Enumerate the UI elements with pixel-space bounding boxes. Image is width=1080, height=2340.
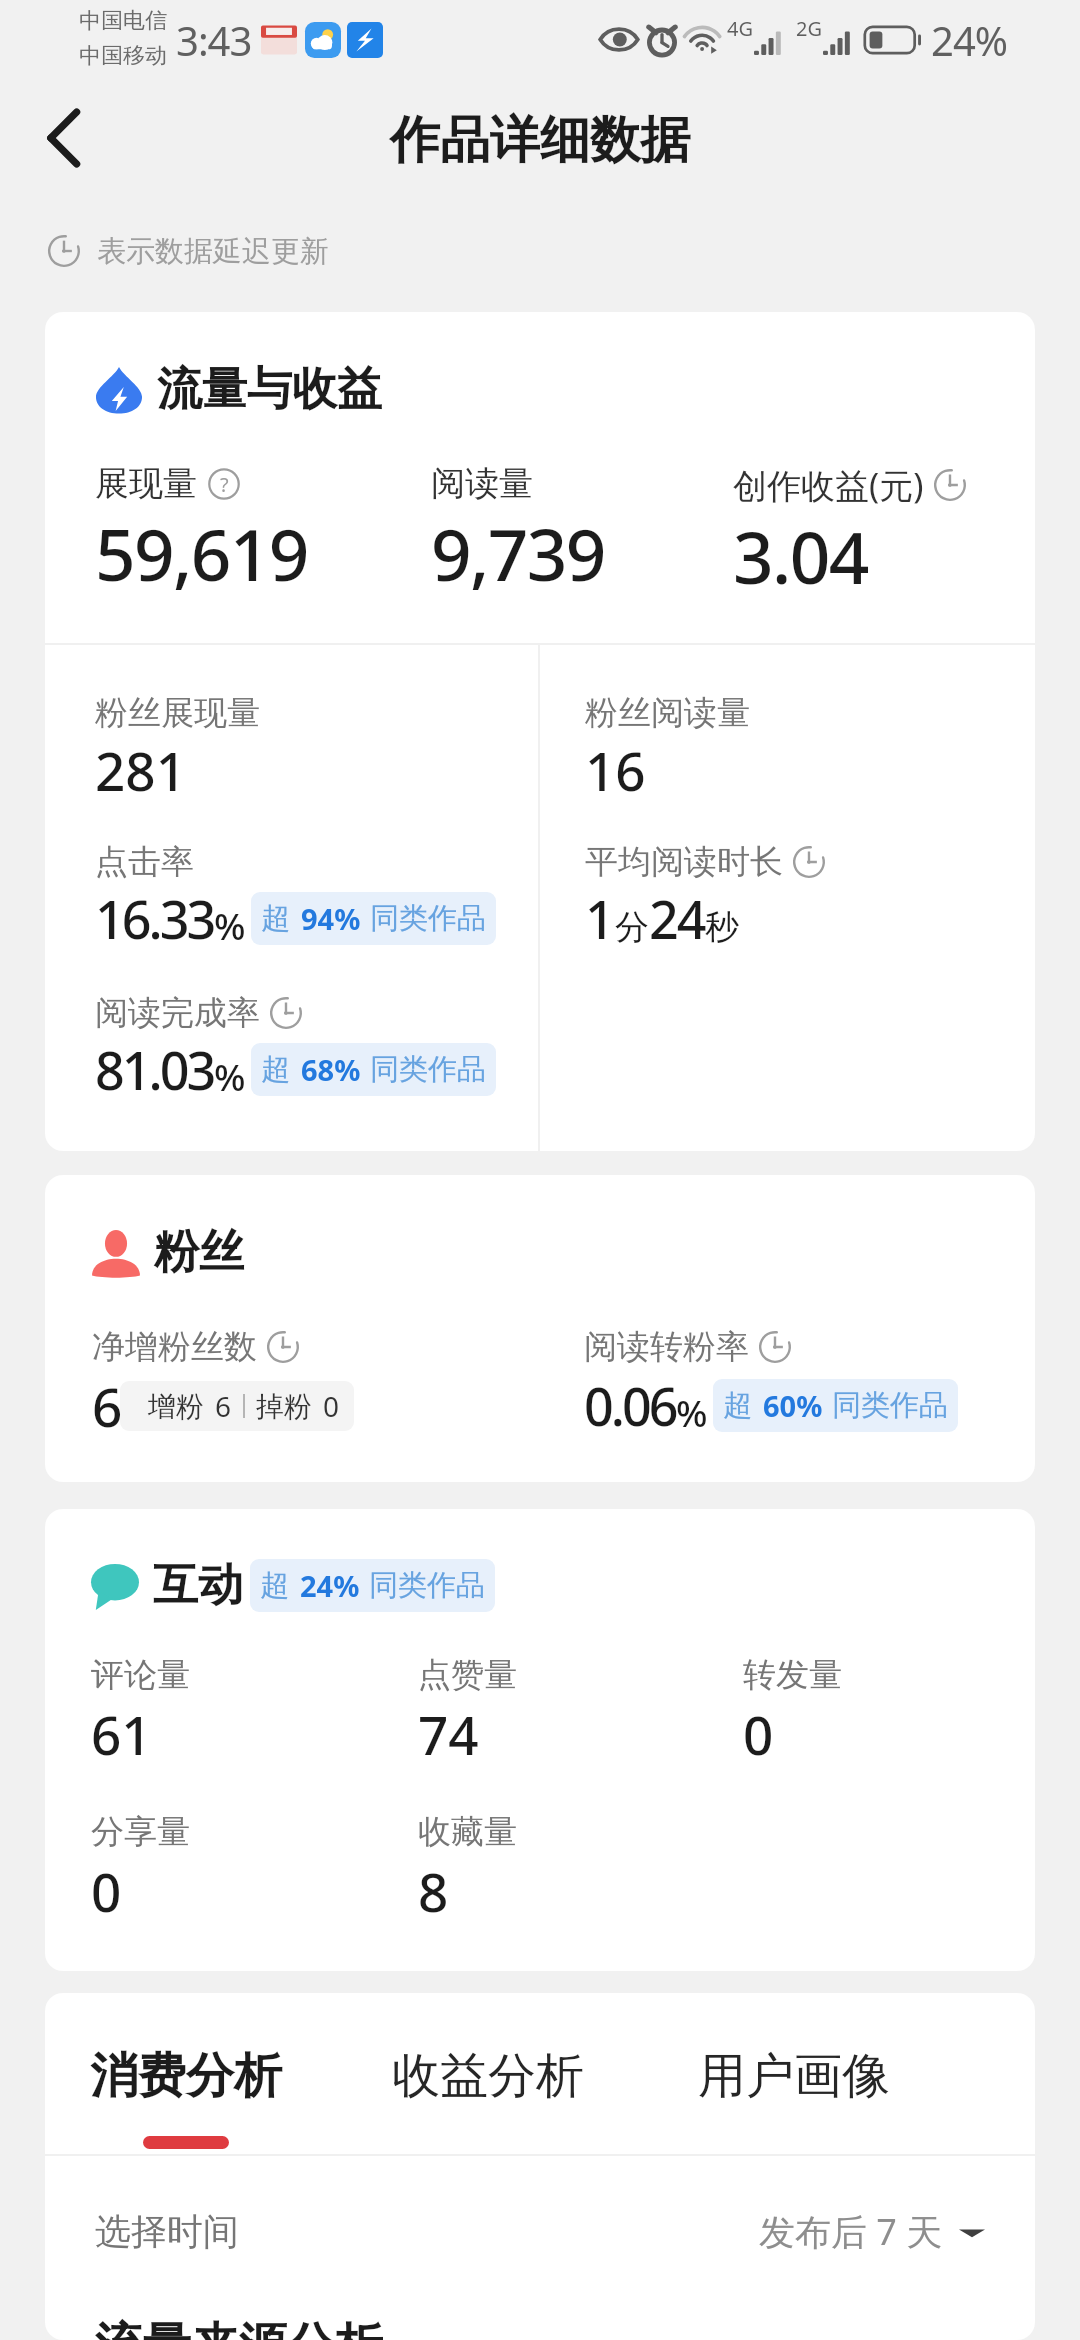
staticText: 24 [649, 883, 705, 954]
staticText: 同类作品 [832, 1387, 948, 1424]
staticText: 同类作品 [370, 1051, 486, 1088]
staticText: 16.33 [95, 883, 214, 954]
staticText: 8 [418, 1855, 449, 1927]
staticText: 流量来源分析 [95, 2316, 383, 2340]
staticText: 0 [91, 1855, 122, 1927]
staticText: 超 [261, 900, 290, 937]
staticText: 94% [301, 899, 361, 938]
staticText: 0 [323, 1387, 340, 1425]
button[interactable]: 用户画像 [693, 2046, 895, 2106]
staticText: 阅读转粉率 [584, 1326, 749, 1368]
staticText: 收益分析 [392, 2046, 584, 2106]
staticText: 增粉 [148, 1389, 204, 1424]
button[interactable]: Back [27, 98, 99, 178]
staticText: 74 [418, 1698, 479, 1770]
staticText: % [676, 1387, 708, 1437]
staticText: 展现量 [95, 462, 197, 505]
staticText: 3.04 [733, 508, 868, 605]
staticText: 60% [763, 1386, 823, 1425]
staticText: 59,619 [95, 505, 308, 602]
button[interactable]: 消费分析 [85, 2046, 287, 2149]
staticText: 6 [215, 1387, 232, 1425]
staticText: 2G [796, 15, 822, 42]
staticText: 掉粉 [256, 1389, 312, 1424]
staticText: 阅读量 [431, 462, 533, 505]
staticText: 粉丝阅读量 [585, 692, 750, 734]
staticText: 超 [260, 1567, 289, 1604]
staticText: 创作收益(元) [733, 462, 924, 508]
staticText: 秒 [705, 906, 739, 949]
staticText: 净增粉丝数 [92, 1326, 257, 1368]
staticText: 3:43 [176, 13, 252, 67]
staticText: 阅读完成率 [95, 992, 260, 1034]
staticText: 流量与收益 [157, 361, 382, 418]
staticText: 点击率 [95, 841, 194, 883]
staticText: 同类作品 [370, 900, 486, 937]
staticText: 互动 [153, 1557, 243, 1614]
staticText: 收藏量 [418, 1811, 517, 1853]
staticText: 24% [300, 1566, 360, 1605]
staticText: 4G [727, 15, 753, 42]
staticText: 超 [723, 1387, 752, 1424]
staticText: ? [220, 471, 229, 498]
staticText: 24% [931, 13, 1007, 67]
button[interactable]: Help: what is impressions [208, 468, 240, 500]
staticText: % [214, 1051, 246, 1101]
staticText: 表示数据延迟更新 [97, 233, 329, 270]
staticText: 68% [301, 1050, 361, 1089]
staticText: 同类作品 [369, 1567, 485, 1604]
staticText: 81.03 [95, 1034, 214, 1105]
staticText: % [214, 900, 246, 950]
staticText: 超 [261, 1051, 290, 1088]
staticText: 分享量 [91, 1811, 190, 1853]
staticText: 评论量 [91, 1654, 190, 1696]
staticText: 6 [92, 1370, 123, 1442]
staticText: 中国电信 [79, 7, 167, 35]
staticText: 1 [585, 883, 615, 954]
staticText: 点赞量 [418, 1654, 517, 1696]
staticText: 作品详细数据 [390, 109, 690, 172]
staticText: 粉丝展现量 [95, 692, 260, 734]
staticText: 9,739 [431, 505, 605, 602]
staticText: 发布后 7 天 [759, 2207, 943, 2256]
staticText: 0.06 [584, 1370, 676, 1441]
staticText: 转发量 [743, 1654, 842, 1696]
staticText: 16 [585, 734, 646, 806]
staticText: 281 [95, 734, 186, 806]
staticText: 分 [615, 906, 649, 949]
staticText: 平均阅读时长 [585, 841, 783, 883]
staticText: 用户画像 [698, 2046, 890, 2106]
staticText: 粉丝 [154, 1224, 244, 1281]
staticText: 消费分析 [90, 2046, 282, 2106]
staticText: 中国移动 [79, 42, 167, 70]
staticText: 0 [743, 1698, 774, 1770]
staticText: 61 [91, 1698, 152, 1770]
button[interactable]: 发布后 7 天 [755, 2199, 989, 2264]
staticText: 选择时间 [95, 2209, 239, 2254]
button[interactable]: 收益分析 [387, 2046, 589, 2106]
